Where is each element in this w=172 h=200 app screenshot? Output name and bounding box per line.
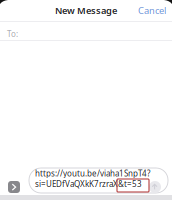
staticText: Cancel bbox=[138, 4, 166, 17]
staticText: New Message bbox=[55, 4, 117, 17]
staticText: https://youtu.be/viaha1SnpT4? bbox=[35, 168, 150, 179]
button[interactable]: Send bbox=[149, 181, 161, 193]
staticText: To: bbox=[7, 29, 18, 39]
button[interactable]: To: bbox=[0, 22, 172, 40]
button[interactable]: Cancel bbox=[132, 0, 172, 21]
button[interactable]: Apps bbox=[8, 181, 20, 193]
staticText: si=UEDfVaQXkK7rzraX&t=53 bbox=[35, 179, 142, 189]
